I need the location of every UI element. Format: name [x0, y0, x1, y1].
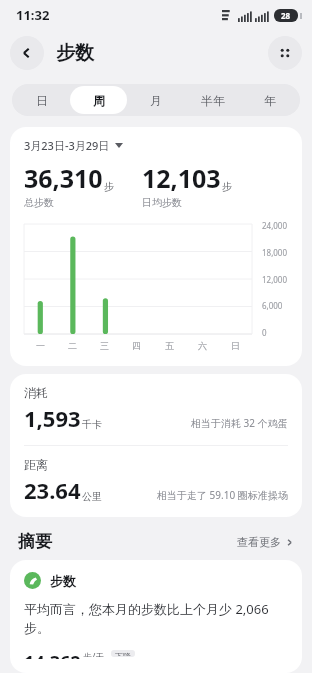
staticText: 步	[104, 180, 114, 193]
staticText: 六	[198, 340, 207, 351]
staticText: 月	[150, 93, 162, 108]
staticText: 总步数	[24, 196, 54, 209]
staticText: 28	[281, 10, 291, 21]
staticText: 三	[100, 340, 109, 351]
staticText: 3月23日-3月29日	[24, 138, 110, 153]
staticText: 相当于走了 59.10 圈标准操场	[157, 488, 288, 502]
staticText: 1,593	[24, 403, 81, 433]
button[interactable]: Back	[10, 36, 44, 70]
staticText: 平均而言，您本月的步数比上个月少 2,066 步。	[24, 600, 288, 637]
button[interactable]: 日	[14, 86, 70, 114]
button[interactable]: 年	[241, 86, 298, 114]
staticText: 半年	[201, 93, 225, 108]
staticText: 距离	[24, 457, 48, 472]
button[interactable]: 步数	[10, 560, 302, 673]
staticText: 千卡	[82, 418, 102, 431]
button[interactable]: 半年	[184, 86, 241, 114]
staticText: 步数	[50, 573, 76, 589]
button[interactable]: 距离	[10, 446, 302, 517]
staticText: 日均步数	[142, 196, 182, 209]
button[interactable]: 3月23日-3月29日	[24, 138, 123, 153]
staticText: 23.64	[24, 475, 81, 505]
staticText: 步/天	[83, 650, 105, 657]
staticText: 11:32	[16, 6, 50, 24]
staticText: 消耗	[24, 385, 48, 400]
staticText: 摘要	[18, 531, 52, 552]
staticText: 一	[36, 340, 45, 351]
staticText: 公里	[82, 490, 102, 503]
staticText: 12,000	[262, 274, 288, 285]
staticText: 年	[264, 93, 276, 108]
staticText: 相当于消耗 32 个鸡蛋	[191, 416, 288, 430]
staticText: 周	[93, 93, 105, 108]
staticText: 查看更多	[237, 535, 281, 549]
staticText: 日	[36, 93, 48, 108]
staticText: 下降	[115, 651, 131, 656]
staticText: 日	[231, 340, 240, 351]
staticText: 36,310	[24, 161, 103, 195]
button[interactable]: 查看更多	[237, 535, 294, 549]
staticText: 四	[132, 340, 141, 351]
staticText: 五	[165, 340, 174, 351]
button[interactable]: 月	[127, 86, 184, 114]
staticText: 24,000	[262, 220, 288, 231]
staticText: 二	[68, 340, 77, 351]
staticText: 步数	[56, 41, 94, 65]
staticText: 步	[222, 180, 232, 193]
staticText: 14,362	[24, 650, 81, 659]
button[interactable]: 周	[70, 86, 127, 114]
staticText: 12,103	[142, 161, 221, 195]
button[interactable]: 消耗	[10, 374, 302, 445]
staticText: 18,000	[262, 247, 288, 258]
staticText: 0	[262, 327, 267, 338]
button[interactable]: More options	[268, 36, 302, 70]
staticText: 6,000	[262, 300, 283, 311]
